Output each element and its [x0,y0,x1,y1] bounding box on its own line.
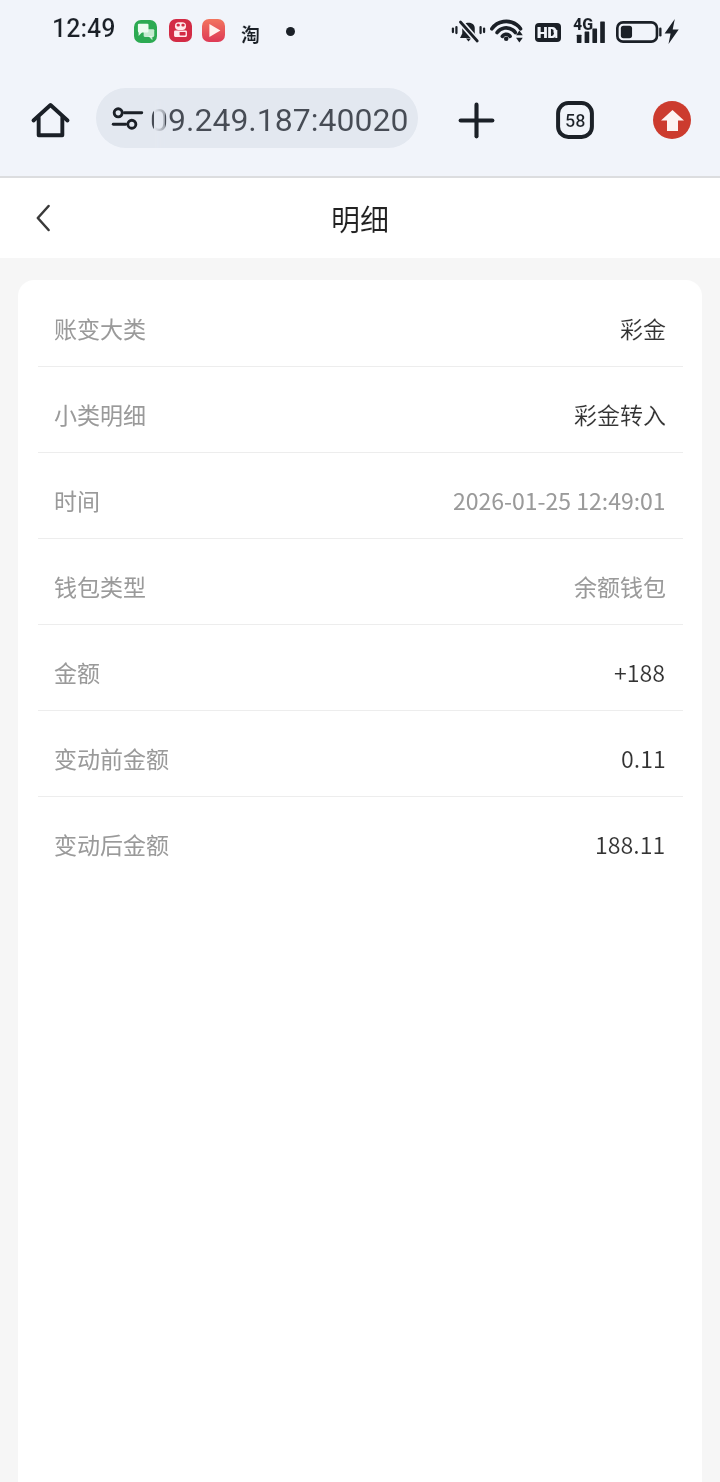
button[interactable]: 变动后金额 [18,797,702,882]
button[interactable]: Downloads [653,101,691,139]
staticText: 2026-01-25 12:49:01 [453,483,666,516]
button[interactable]: New tab [448,92,504,148]
staticText: 1 [553,29,559,41]
staticText: 09.249.187:40020 [150,101,409,139]
staticText: 4G [573,15,594,34]
button[interactable]: 变动前金额 [18,711,702,796]
staticText: +188 [614,655,666,688]
staticText: 时间 [54,483,100,516]
staticText: 188.11 [595,827,666,860]
button[interactable]: 小类明细 [18,367,702,452]
button[interactable]: Tabs [556,101,594,139]
staticText: 余额钱包 [574,569,666,602]
staticText: 12:49 [52,14,116,43]
button[interactable]: 时间 [18,453,702,538]
staticText: HD [537,24,558,42]
button[interactable]: 金额 [18,625,702,710]
staticText: 变动后金额 [54,827,169,860]
staticText: 彩金 [620,311,666,344]
staticText: 小类明细 [54,397,146,430]
staticText: 账变大类 [54,311,146,344]
staticText: 明细 [331,197,390,239]
button[interactable]: 钱包类型 [18,539,702,624]
button[interactable]: 09.249.187:40020 [96,88,418,148]
staticText: 淘 [241,20,261,48]
staticText: 金额 [54,655,100,688]
staticText: 彩金转入 [574,397,666,430]
button[interactable]: Home [22,92,78,148]
button[interactable]: 账变大类 [18,280,702,366]
staticText: 0.11 [621,741,666,774]
button[interactable]: Back [17,190,73,246]
staticText: 58 [565,110,586,131]
staticText: 变动前金额 [54,741,169,774]
staticText: 钱包类型 [54,569,146,602]
